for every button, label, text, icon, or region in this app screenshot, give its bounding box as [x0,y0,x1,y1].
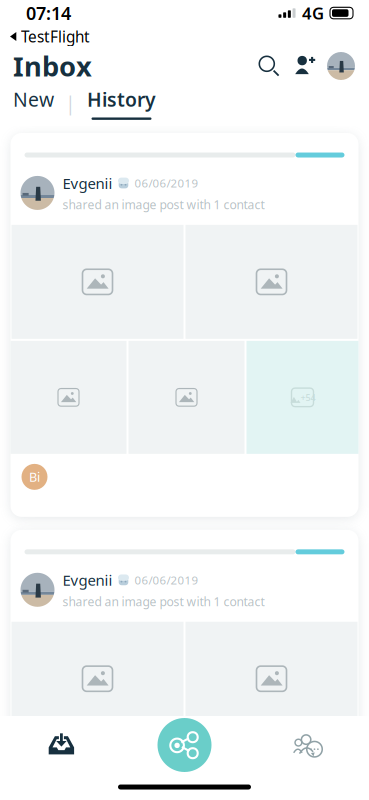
button[interactable]: History [87,86,156,120]
staticText: History [87,86,156,112]
staticText: 07:14 [26,1,71,25]
button[interactable]: New [13,86,54,120]
staticText: | [65,90,76,116]
button[interactable]: Add contact [287,47,323,85]
staticText: New [13,86,54,112]
staticText: shared an image post with 1 contact [62,593,264,610]
button[interactable]: Inbox [0,716,123,774]
staticText: Bi [29,468,40,485]
staticText: 06/06/2019 [134,572,198,588]
button[interactable]: Profile [323,47,359,85]
staticText: +54 [300,391,315,403]
staticText: Evgenii [62,570,112,590]
staticText: Evgenii [62,173,112,193]
button[interactable]: Search [251,47,287,85]
staticText: 4G [302,2,324,24]
button[interactable]: Share [123,716,246,774]
staticText: TestFlight [21,26,90,47]
staticText: shared an image post with 1 contact [62,196,264,213]
staticText: Inbox [13,47,92,85]
staticText: 06/06/2019 [134,175,198,191]
button[interactable]: Contacts [246,716,369,774]
